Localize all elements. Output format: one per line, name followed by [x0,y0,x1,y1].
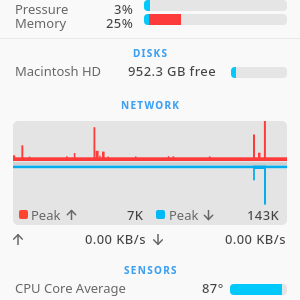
staticText: Peak [31,206,61,224]
staticText: SENSORS [124,263,178,277]
button[interactable]: Network throughput up and down [0,230,300,246]
button[interactable]: Macintosh HD 952.3 GB free [0,65,300,79]
button[interactable]: CPU Core Average 87° [0,282,300,296]
staticText: 143K [247,206,280,224]
staticText: DISKS [133,46,169,60]
staticText: 25% [106,14,134,32]
staticText: Peak [169,206,199,224]
staticText: 0.00 KB/s [85,230,146,248]
staticText: CPU Core Average [15,279,126,297]
staticText: 7K [127,206,144,224]
staticText: 87° [202,279,224,297]
staticText: 952.3 GB free [128,62,216,80]
staticText: Memory [15,14,67,32]
button[interactable]: Network activity graph [13,121,287,225]
staticText: 3% [114,0,134,18]
staticText: Macintosh HD [15,62,102,80]
button[interactable]: Pressure 3% [0,3,300,17]
staticText: NETWORK [121,98,181,112]
staticText: Pressure [15,0,69,18]
button[interactable]: Memory 25% [0,17,300,31]
staticText: 0.00 KB/s [225,230,286,248]
